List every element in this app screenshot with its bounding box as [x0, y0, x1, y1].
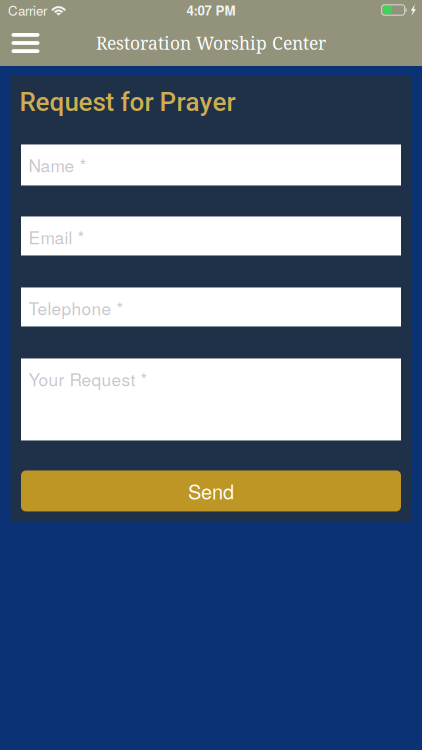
staticText: Your Request *	[28, 366, 147, 391]
button[interactable]: Your Request *	[21, 358, 401, 440]
staticText: 4:07 PM	[186, 0, 235, 20]
staticText: Telephone *	[28, 295, 123, 320]
staticText: Email *	[28, 224, 84, 249]
button[interactable]: Send	[21, 470, 401, 511]
staticText: Send	[188, 477, 234, 505]
staticText: Name *	[28, 152, 86, 177]
button[interactable]: Name *	[21, 144, 401, 185]
button[interactable]: Menu	[0, 20, 51, 66]
button[interactable]: Email *	[21, 216, 401, 255]
staticText: Carrier	[8, 0, 47, 20]
staticText: Request for Prayer	[19, 87, 235, 117]
button[interactable]: Telephone *	[21, 287, 401, 326]
staticText: Restoration Worship Center	[96, 31, 326, 55]
